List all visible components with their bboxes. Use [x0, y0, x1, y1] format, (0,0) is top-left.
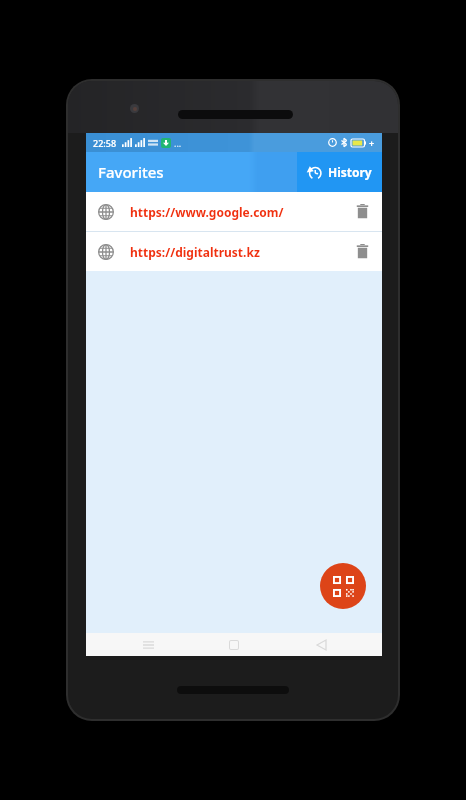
staticText: History	[328, 164, 372, 180]
button[interactable]: https://www.google.com/	[86, 192, 382, 231]
staticText: https://digitaltrust.kz	[130, 244, 342, 260]
button[interactable]: Back	[296, 633, 346, 656]
button[interactable]: History	[297, 152, 382, 192]
button[interactable]: https://digitaltrust.kz	[86, 232, 382, 271]
button[interactable]: Recent apps	[123, 633, 173, 656]
staticText: ...	[174, 137, 182, 149]
button[interactable]: Delete	[342, 192, 382, 231]
staticText: Favorites	[98, 162, 164, 182]
staticText: 22:58	[93, 137, 117, 149]
staticText: +	[369, 137, 375, 149]
button[interactable]: Delete	[342, 232, 382, 271]
button[interactable]: Home	[209, 633, 259, 656]
button[interactable]: Scan QR code	[320, 563, 366, 609]
staticText: https://www.google.com/	[130, 204, 342, 220]
